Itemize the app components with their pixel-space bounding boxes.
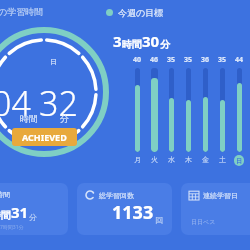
staticText: 水 xyxy=(168,155,175,164)
staticText: 31 xyxy=(11,202,29,222)
staticText: 金 xyxy=(202,155,209,164)
staticText: 分 xyxy=(29,212,37,222)
staticText: 日日ベス xyxy=(191,218,216,226)
button[interactable]: 35 xyxy=(217,55,227,164)
button[interactable]: Total study count xyxy=(77,183,172,235)
staticText: 火 xyxy=(151,155,158,164)
staticText: 土 xyxy=(219,155,226,164)
staticText: ジ内：17時間31分 xyxy=(0,224,24,231)
button[interactable]: 35 xyxy=(183,55,193,164)
staticText: の学習時間 xyxy=(0,6,44,17)
staticText: 日 xyxy=(236,157,242,165)
button[interactable]: ACHIEVED xyxy=(12,128,77,146)
button[interactable]: 学習時間 xyxy=(0,183,68,235)
button[interactable]: 40 xyxy=(132,55,142,164)
staticText: 時間 xyxy=(0,209,11,222)
button[interactable]: 今週の目標 xyxy=(104,6,166,19)
other: Consecutive study days xyxy=(189,190,199,200)
staticText: 04 xyxy=(0,80,31,126)
staticText: 日 xyxy=(50,57,57,66)
staticText: 1133 xyxy=(112,200,154,225)
button[interactable]: Consecutive study days xyxy=(181,183,250,235)
staticText: 36 xyxy=(201,55,210,65)
button[interactable]: 44 xyxy=(234,55,244,166)
staticText: 32 xyxy=(39,80,78,126)
staticText: 連続学習日 xyxy=(203,191,238,200)
staticText: 月 xyxy=(134,155,141,164)
staticText: 木 xyxy=(185,155,192,164)
staticText: 35 xyxy=(184,55,193,65)
staticText: 分 xyxy=(160,38,170,51)
staticText: 3 xyxy=(113,31,122,51)
staticText: 35 xyxy=(167,55,176,65)
staticText: 46 xyxy=(150,55,159,65)
staticText: 学習時間 xyxy=(0,190,10,199)
staticText: 時間 xyxy=(122,38,142,51)
staticText: 総学習回数 xyxy=(99,191,134,200)
button[interactable]: 35 xyxy=(166,55,176,164)
staticText: 30 xyxy=(142,31,160,51)
staticText: 時間 xyxy=(20,113,38,124)
other: Total study count xyxy=(85,190,95,200)
staticText: 回 xyxy=(155,215,163,225)
staticText: 44 xyxy=(235,55,244,65)
button[interactable]: 36 xyxy=(200,55,210,164)
staticText: 40 xyxy=(133,55,142,65)
staticText: 今週の目標 xyxy=(118,7,164,18)
button[interactable]: 46 xyxy=(149,55,159,164)
staticText: ACHIEVED xyxy=(22,131,67,143)
staticText: 35 xyxy=(218,55,227,65)
staticText: 分 xyxy=(60,113,69,124)
